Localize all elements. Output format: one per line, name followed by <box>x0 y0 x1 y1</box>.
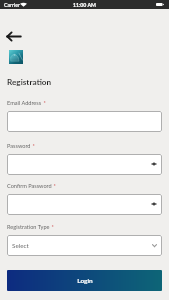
button[interactable]: Toggle password visibility <box>7 194 162 215</box>
button[interactable]: Select <box>7 235 162 256</box>
button[interactable]: Back <box>1 28 27 45</box>
staticText: Confirm Password <box>7 182 52 189</box>
staticText: Password <box>7 142 31 149</box>
button[interactable]: Toggle password visibility <box>7 154 162 175</box>
staticText: Registration <box>7 77 52 87</box>
staticText: * <box>50 223 54 230</box>
button[interactable] <box>7 111 162 132</box>
staticText: * <box>52 182 56 189</box>
staticText: Login <box>77 277 93 285</box>
button[interactable]: Login <box>7 270 162 291</box>
staticText: * <box>42 99 46 106</box>
staticText: Carrier <box>4 2 20 8</box>
button[interactable]: Toggle password visibility <box>148 159 159 170</box>
button[interactable]: Toggle password visibility <box>148 199 159 210</box>
staticText: Registration Type <box>7 223 50 230</box>
staticText: Select <box>12 242 29 250</box>
staticText: 11:00 AM <box>73 2 96 8</box>
staticText: Email Address <box>7 99 42 106</box>
staticText: * <box>31 142 35 149</box>
